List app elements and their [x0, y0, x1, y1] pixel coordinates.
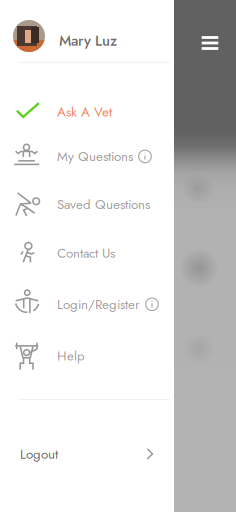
staticText: Help — [57, 346, 85, 365]
staticText: Saved Questions — [57, 195, 150, 214]
staticText: Logout — [20, 444, 58, 464]
staticText: Login/Register — [57, 295, 140, 314]
button[interactable]: Contact Us — [0, 231, 174, 275]
button[interactable]: My Questions — [0, 134, 174, 178]
button[interactable]: Saved Questions — [0, 182, 174, 226]
button[interactable]: Login/Register — [0, 282, 174, 326]
staticText: My Questions — [57, 147, 133, 166]
button[interactable]: Ask A Vet — [0, 90, 174, 134]
staticText: Mary Luz — [59, 30, 117, 51]
button[interactable]: Menu — [189, 24, 231, 62]
button[interactable]: Logout — [0, 426, 174, 482]
staticText: Contact Us — [57, 244, 115, 263]
staticText: Ask A Vet — [57, 102, 112, 121]
button[interactable]: Help — [0, 334, 174, 378]
